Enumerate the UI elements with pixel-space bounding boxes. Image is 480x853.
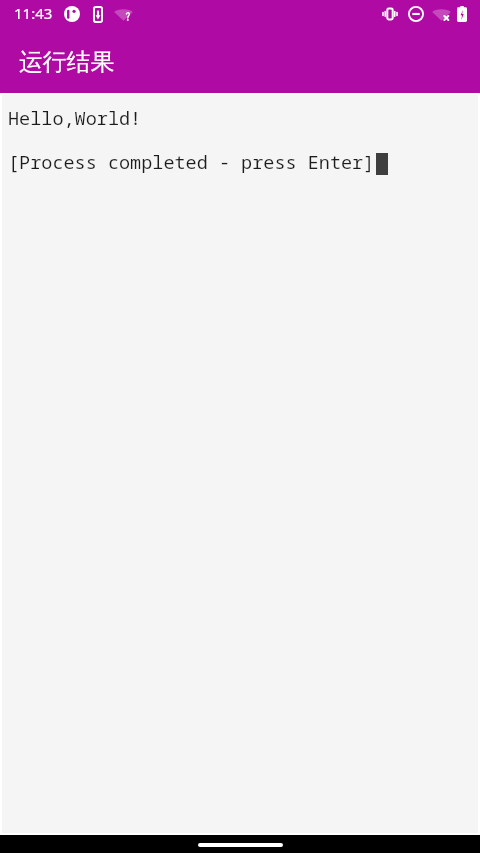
- other: Home gesture: [198, 843, 283, 847]
- other: Vibrate mode: [381, 5, 399, 23]
- other: Wi-Fi disconnected: [432, 6, 451, 21]
- staticText: Hello,World!: [8, 105, 142, 130]
- staticText: 运行结果: [19, 47, 115, 77]
- other: Do not disturb: [408, 6, 424, 22]
- staticText: 11:43: [14, 3, 53, 23]
- staticText: [Process completed - press Enter]: [8, 149, 375, 174]
- other: Wi-Fi no internet: [114, 6, 133, 21]
- other: App notification: [64, 6, 80, 22]
- other: Download to phone: [93, 6, 103, 23]
- other: Battery charging: [457, 6, 467, 22]
- button[interactable]: Hello,World!: [0, 93, 480, 835]
